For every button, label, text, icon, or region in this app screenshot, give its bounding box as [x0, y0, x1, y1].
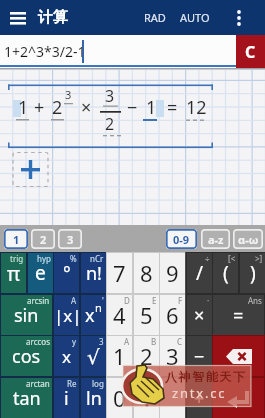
button[interactable]: |x|: [54, 295, 79, 335]
button[interactable]: 9: [160, 253, 185, 293]
staticText: ): [250, 260, 256, 286]
button[interactable]: 7: [107, 253, 132, 293]
staticText: >]: [255, 253, 263, 264]
button[interactable]: AUTO: [180, 10, 210, 25]
staticText: 2: [140, 341, 153, 371]
button[interactable]: 2: [134, 336, 159, 376]
button[interactable]: i: [54, 378, 79, 418]
staticText: =: [167, 95, 178, 120]
staticText: 3: [99, 336, 104, 347]
staticText: Re: [67, 378, 77, 389]
staticText: arctan: [26, 378, 50, 389]
button[interactable]: a-z: [201, 229, 230, 249]
button[interactable]: .: [134, 378, 159, 418]
staticText: A: [124, 336, 130, 347]
button[interactable]: RAD: [144, 10, 166, 25]
staticText: 9: [166, 258, 179, 288]
staticText: /: [196, 260, 204, 286]
staticText: [<: [228, 253, 236, 264]
button[interactable]: 3: [160, 336, 185, 376]
staticText: 1: [113, 341, 126, 371]
staticText: 2: [52, 95, 63, 120]
staticText: ': [102, 295, 104, 306]
staticText: %: [70, 253, 77, 264]
button[interactable]: ): [240, 253, 265, 293]
button[interactable]: 6: [160, 295, 185, 335]
button[interactable]: (: [213, 253, 238, 293]
button[interactable]: 0: [107, 378, 132, 418]
button[interactable]: °: [54, 253, 79, 293]
staticText: 1: [18, 95, 29, 120]
staticText: 0: [113, 383, 126, 413]
button[interactable]: 1: [107, 336, 132, 376]
button[interactable]: sin: [1, 295, 52, 335]
staticText: 7: [113, 258, 126, 288]
button[interactable]: n!: [81, 253, 106, 293]
staticText: i: [64, 386, 69, 411]
staticText: √: [87, 345, 100, 368]
staticText: π: [7, 260, 21, 287]
button[interactable]: ln: [81, 378, 106, 418]
staticText: 1: [146, 95, 157, 120]
staticText: ×: [81, 95, 92, 120]
button[interactable]: x: [54, 336, 79, 376]
staticText: arccos: [26, 336, 50, 347]
staticText: 12: [186, 95, 207, 120]
staticText: a-z: [208, 232, 224, 247]
staticText: 3: [105, 85, 115, 107]
staticText: 3: [65, 87, 72, 102]
staticText: Ans: [248, 295, 262, 306]
button[interactable]: /: [187, 253, 212, 293]
staticText: log: [92, 378, 104, 389]
staticText: .: [144, 383, 150, 413]
button[interactable]: C: [236, 35, 265, 68]
button[interactable]: [229, 5, 249, 31]
button[interactable]: −: [187, 336, 212, 376]
button[interactable]: +: [187, 378, 212, 418]
button[interactable]: [8, 85, 213, 147]
staticText: ·: [207, 295, 210, 306]
staticText: C: [245, 41, 256, 63]
button[interactable]: 0-9: [166, 229, 197, 249]
staticText: −: [194, 344, 205, 369]
button[interactable]: 1: [4, 229, 28, 249]
button[interactable]: 8: [134, 253, 159, 293]
staticText: E: [152, 295, 157, 306]
button[interactable]: tan: [1, 378, 52, 418]
button[interactable]: 5: [134, 295, 159, 335]
button[interactable]: x: [81, 295, 106, 335]
staticText: +: [34, 95, 45, 120]
staticText: ln: [86, 386, 102, 411]
staticText: α-ω: [238, 232, 259, 247]
button[interactable]: ×: [187, 295, 212, 335]
button[interactable]: 4: [107, 295, 132, 335]
staticText: C: [177, 336, 183, 347]
button[interactable]: √: [81, 336, 106, 376]
button[interactable]: cos: [1, 336, 52, 376]
staticText: A: [71, 295, 77, 306]
button[interactable]: π: [1, 253, 26, 293]
button[interactable]: [6, 7, 30, 29]
button[interactable]: [213, 378, 264, 418]
button[interactable]: e: [28, 253, 53, 293]
staticText: tan: [13, 386, 41, 411]
button[interactable]: α-ω: [233, 229, 263, 249]
staticText: hyp: [37, 253, 51, 264]
staticText: (: [223, 260, 229, 286]
staticText: e: [35, 260, 46, 286]
staticText: cos: [12, 344, 41, 369]
button[interactable]: [160, 378, 185, 418]
staticText: D: [124, 295, 130, 306]
staticText: 4: [113, 300, 126, 330]
button[interactable]: 3: [58, 229, 82, 249]
button[interactable]: [213, 336, 264, 376]
staticText: x: [62, 345, 71, 368]
staticText: nCr: [90, 253, 104, 264]
staticText: n: [95, 300, 102, 315]
button[interactable]: [13, 152, 48, 187]
staticText: y: [72, 336, 77, 347]
button[interactable]: =: [213, 295, 264, 335]
staticText: +: [194, 386, 205, 411]
staticText: 5: [140, 300, 153, 330]
button[interactable]: 2: [31, 229, 55, 249]
